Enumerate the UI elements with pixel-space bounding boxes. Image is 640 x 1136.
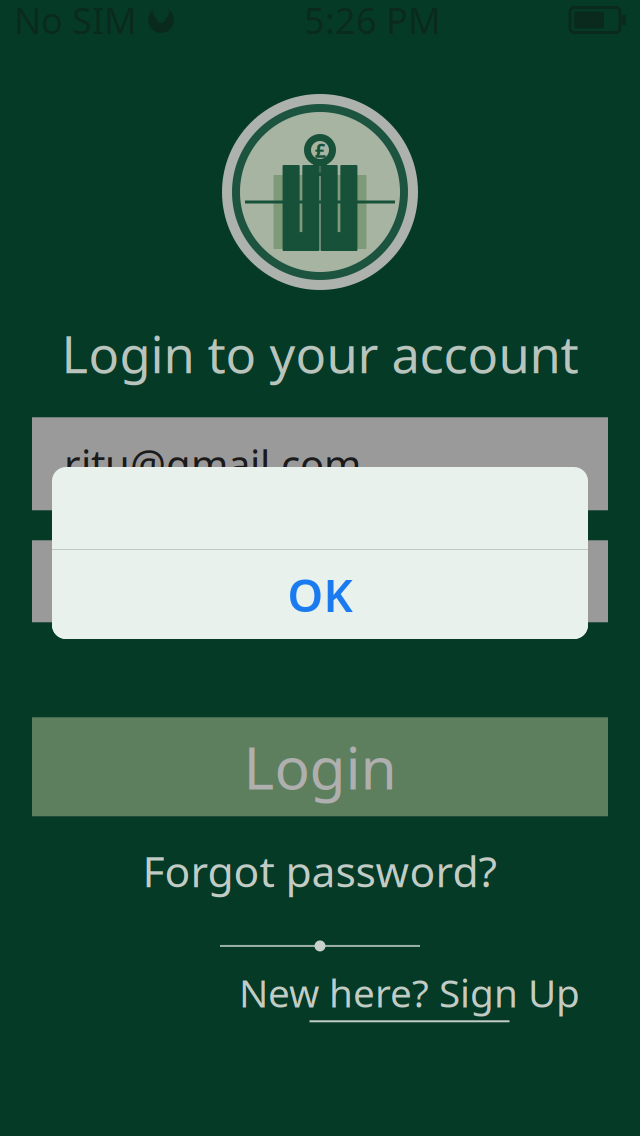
button[interactable]: Forgot password? (130, 834, 509, 907)
staticText: Login to your account (61, 320, 578, 387)
staticText: No SIM (14, 0, 137, 44)
staticText: £ (314, 137, 325, 163)
button[interactable]: New here? Sign Up (239, 967, 580, 1022)
staticText: Login (243, 728, 396, 806)
staticText: 5:26 PM (304, 0, 441, 44)
staticText: OK (287, 564, 352, 625)
button[interactable]: OK (52, 550, 588, 639)
button[interactable]: Login (32, 717, 608, 816)
staticText: ritu@gmail.com (64, 437, 361, 490)
staticText: New here? Sign Up (239, 967, 580, 1018)
staticText: Forgot password? (142, 842, 497, 899)
